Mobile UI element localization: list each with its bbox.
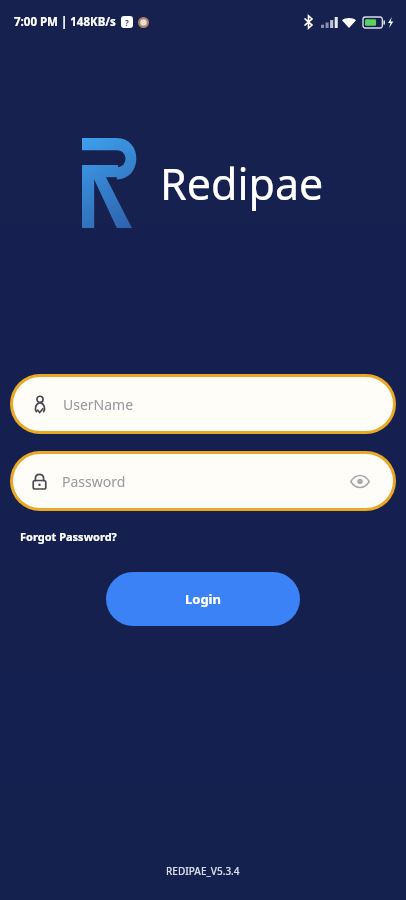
staticText: Forgot Password? [20, 529, 117, 544]
button[interactable]: Login [106, 572, 300, 626]
button[interactable]: Forgot Password? [18, 527, 119, 546]
button[interactable]: User [10, 374, 396, 434]
button[interactable]: Show password [345, 466, 375, 496]
other: Password [31, 473, 48, 490]
staticText: ? [125, 17, 129, 28]
staticText: REDIPAE_V5.3.4 [166, 864, 240, 878]
other: User [31, 395, 49, 413]
staticText: Login [185, 590, 221, 608]
button[interactable]: Password [10, 451, 396, 511]
staticText: UserName [63, 395, 134, 414]
staticText: 7:00 PM | 148KB/s [14, 14, 116, 30]
staticText: Password [62, 472, 126, 491]
staticText: Redipae [160, 154, 324, 213]
